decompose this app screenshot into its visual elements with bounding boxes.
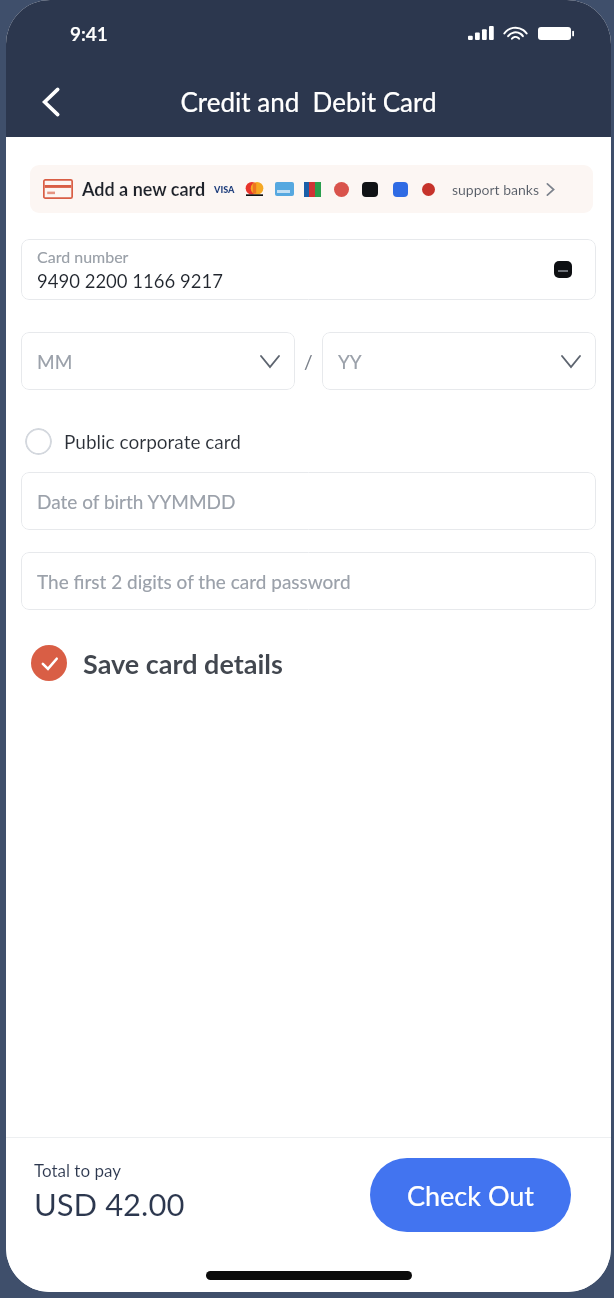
button[interactable]: Public corporate card: [25, 427, 596, 455]
staticText: 9:41: [70, 22, 108, 45]
button[interactable]: Add a new card: [30, 165, 593, 213]
staticText: Public corporate card: [64, 430, 241, 453]
staticText: Card number: [37, 247, 129, 266]
staticText: Check Out: [407, 1179, 535, 1211]
staticText: MM: [37, 350, 73, 373]
button[interactable]: Date of birth YYMMDD: [21, 472, 596, 530]
staticText: YY: [338, 350, 362, 373]
button[interactable]: Save card details: [31, 645, 596, 681]
button[interactable]: The first 2 digits of the card password: [21, 552, 596, 610]
staticText: Credit and Debit Card: [76, 86, 541, 117]
staticText: The first 2 digits of the card password: [37, 570, 351, 593]
staticText: 9490 2200 1166 9217: [37, 270, 223, 292]
staticText: Total to pay: [34, 1160, 121, 1180]
button[interactable]: Back: [26, 77, 76, 127]
staticText: VISA: [214, 184, 235, 195]
staticText: Save card details: [83, 647, 283, 679]
button[interactable]: Card number: [21, 239, 596, 300]
button[interactable]: MM: [21, 332, 295, 390]
button[interactable]: YY: [322, 332, 596, 390]
staticText: USD 42.00: [34, 1185, 185, 1222]
staticText: Add a new card: [82, 178, 206, 200]
staticText: /: [304, 350, 313, 373]
staticText: Date of birth YYMMDD: [37, 490, 236, 513]
button[interactable]: Check Out: [370, 1158, 571, 1232]
staticText: support banks: [452, 181, 539, 198]
